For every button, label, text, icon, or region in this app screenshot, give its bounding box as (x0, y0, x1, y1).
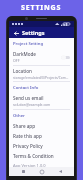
button[interactable]: Location (13, 66, 70, 81)
button[interactable]: Send us email (13, 93, 70, 109)
staticText: Other (13, 113, 25, 119)
button[interactable]: Share app (13, 121, 70, 131)
button[interactable]: Toggle dark mode (61, 55, 70, 60)
staticText: solution@example.com (13, 102, 51, 107)
button[interactable]: Terms & Condition (13, 151, 70, 161)
staticText: Project Setting (13, 41, 44, 47)
staticText: storage/emulated/0/Projects/Compose/samp… (13, 75, 70, 79)
staticText: OFF (13, 58, 20, 63)
staticText: App Version 1.0.0 (13, 163, 46, 167)
staticText: SETTINGS (21, 3, 62, 13)
button[interactable]: Recents (19, 167, 28, 176)
button[interactable]: DarkMode (13, 49, 70, 65)
staticText: DarkMode (13, 51, 37, 57)
button[interactable]: Back (56, 167, 65, 176)
staticText: Share app (13, 123, 36, 129)
staticText: Contact Info (13, 85, 39, 91)
staticText: Rate this app (13, 133, 42, 139)
staticText: Settings (22, 29, 45, 36)
staticText: Send us email (13, 95, 44, 101)
button[interactable]: Home (37, 167, 46, 176)
button[interactable]: Back (12, 29, 20, 37)
staticText: Location (13, 68, 32, 74)
staticText: Terms & Condition (13, 153, 54, 159)
staticText: Privacy Policy (13, 143, 43, 149)
button[interactable]: Rate this app (13, 131, 70, 141)
button[interactable]: Privacy Policy (13, 141, 70, 151)
